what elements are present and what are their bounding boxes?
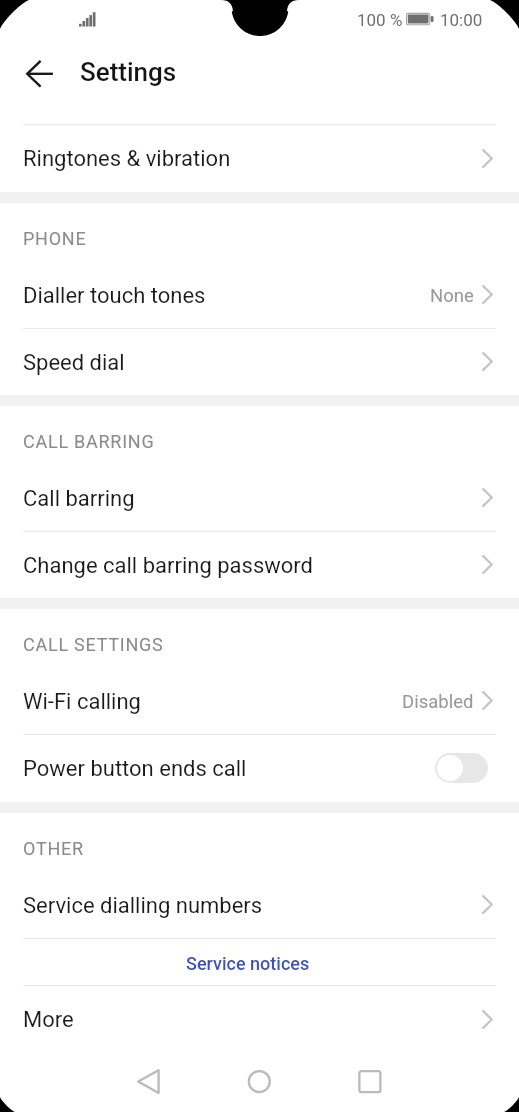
button[interactable]: Ringtones & vibration (0, 124, 519, 192)
staticText: None (430, 285, 474, 307)
button[interactable]: Speed dial (0, 328, 519, 395)
button[interactable]: Power button ends call (0, 734, 519, 802)
staticText: Disabled (402, 691, 474, 713)
staticText: OTHER (23, 838, 84, 859)
button[interactable]: Call barring (0, 464, 519, 531)
staticText: Power button ends call (23, 756, 247, 782)
button[interactable]: Change call barring password (0, 531, 519, 598)
staticText: 100 % (357, 10, 403, 30)
staticText: Change call barring password (23, 553, 313, 579)
button[interactable]: More (0, 985, 519, 1053)
staticText: Service notices (186, 953, 310, 974)
staticText: Wi-Fi calling (23, 689, 141, 715)
staticText: Call barring (23, 486, 135, 512)
staticText: Speed dial (23, 350, 125, 376)
button[interactable]: Back (110, 1053, 188, 1111)
staticText: Dialler touch tones (23, 283, 206, 309)
staticText: Settings (80, 57, 177, 87)
button[interactable]: Back (16, 50, 64, 98)
staticText: CALL BARRING (23, 431, 155, 452)
staticText: Service dialling numbers (23, 893, 263, 919)
staticText: Ringtones & vibration (23, 146, 231, 172)
button[interactable]: Service notices (0, 938, 519, 985)
staticText: 10:00 (440, 10, 483, 30)
staticText: CALL SETTINGS (23, 634, 164, 655)
button[interactable]: Power button ends call (435, 753, 488, 783)
button[interactable]: Dialler touch tones (0, 261, 519, 328)
staticText: PHONE (23, 228, 87, 249)
button[interactable]: Wi-Fi calling (0, 667, 519, 734)
button[interactable]: Service dialling numbers (0, 871, 519, 938)
staticText: More (23, 1007, 74, 1033)
button[interactable]: Home (220, 1053, 298, 1111)
button[interactable]: Recent apps (331, 1053, 409, 1111)
